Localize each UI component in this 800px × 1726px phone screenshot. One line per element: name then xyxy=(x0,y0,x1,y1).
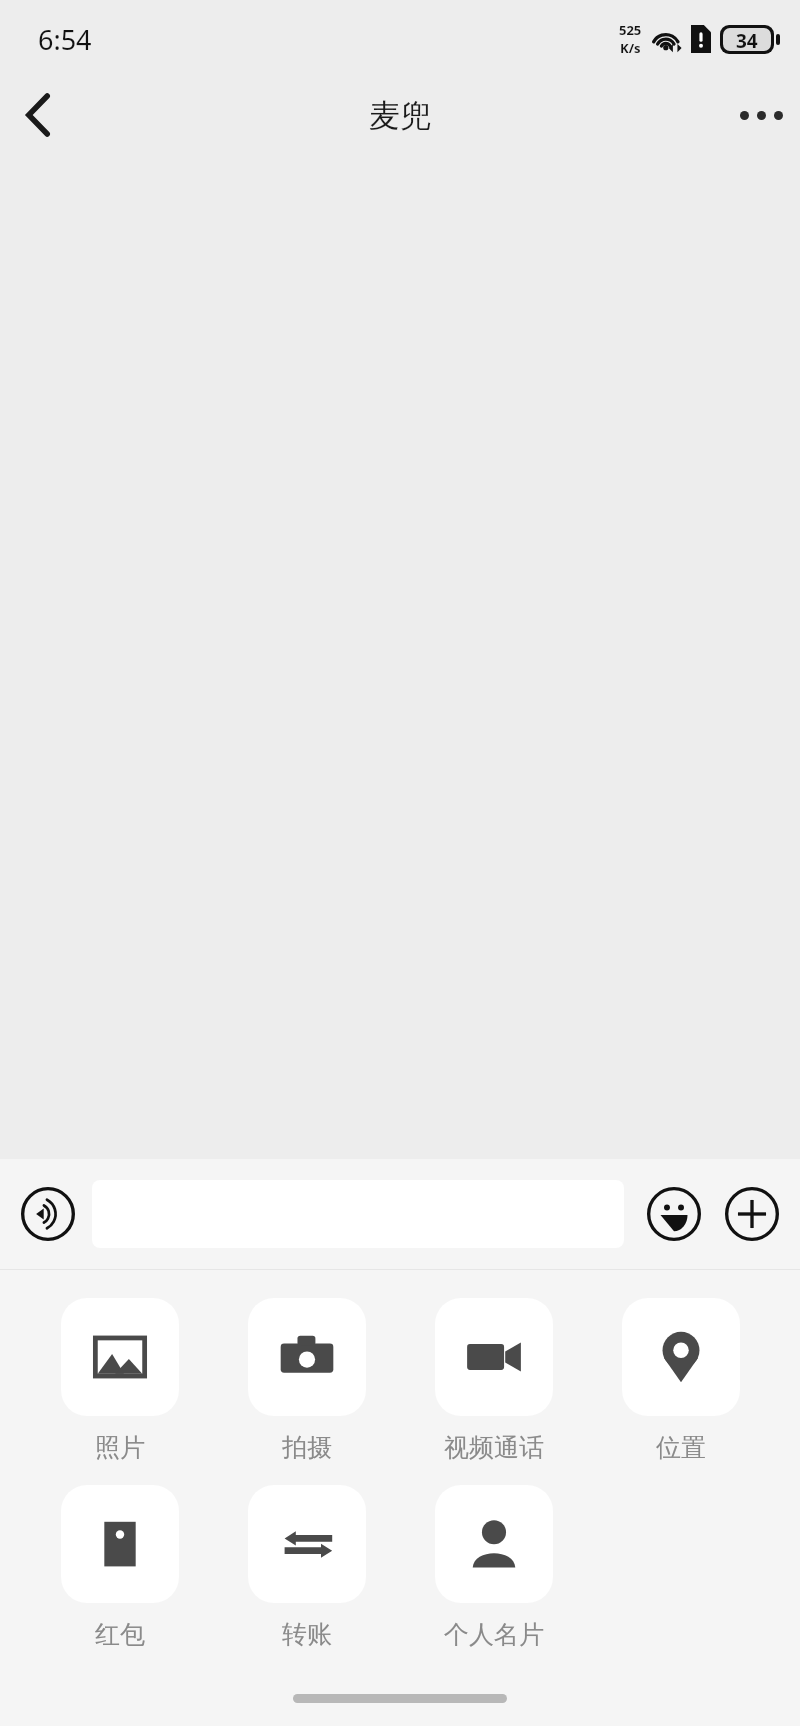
button[interactable]: Back xyxy=(0,78,76,152)
button[interactable]: 视频通话 xyxy=(400,1298,587,1463)
staticText: 视频通话 xyxy=(444,1432,544,1463)
staticText: 个人名片 xyxy=(444,1619,544,1650)
button[interactable]: Voice input xyxy=(18,1184,78,1244)
button[interactable]: 照片 xyxy=(26,1298,213,1463)
staticText: 6:54 xyxy=(38,21,92,58)
staticText: 位置 xyxy=(656,1432,706,1463)
button[interactable]: 红包 xyxy=(26,1485,213,1650)
button[interactable]: 拍摄 xyxy=(213,1298,400,1463)
staticText: 红包 xyxy=(95,1619,145,1650)
staticText: 525 xyxy=(619,21,642,39)
staticText: 34 xyxy=(736,28,758,51)
button[interactable]: 位置 xyxy=(587,1298,774,1463)
button[interactable]: 转账 xyxy=(213,1485,400,1650)
button[interactable]: Emoji xyxy=(644,1184,704,1244)
staticText: K/s xyxy=(620,39,641,57)
staticText: 拍摄 xyxy=(282,1432,332,1463)
button[interactable]: 个人名片 xyxy=(400,1485,587,1650)
button[interactable]: More, attachments xyxy=(722,1184,782,1244)
staticText: 麦兜 xyxy=(369,96,431,135)
staticText: 转账 xyxy=(282,1619,332,1650)
staticText: 照片 xyxy=(95,1432,145,1463)
button[interactable]: More options xyxy=(722,78,800,152)
